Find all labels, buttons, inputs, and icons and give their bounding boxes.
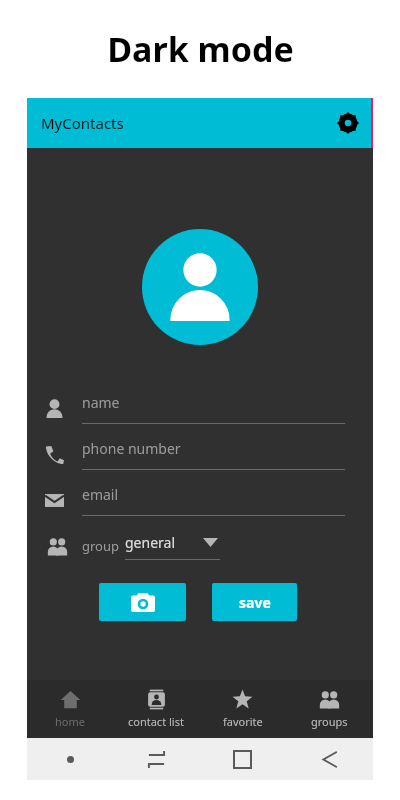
staticText: email	[82, 485, 119, 504]
button[interactable]: Recents	[199, 738, 286, 780]
staticText: MyContacts	[41, 113, 325, 133]
staticText: general	[125, 533, 176, 552]
staticText: save	[239, 593, 271, 612]
button[interactable]: favorite	[199, 680, 286, 738]
button[interactable]: Profile photo	[142, 229, 258, 345]
button[interactable]: name	[27, 385, 373, 431]
button[interactable]: email	[27, 477, 373, 523]
button[interactable]: Take photo	[99, 583, 186, 621]
button[interactable]: save	[212, 583, 297, 621]
button[interactable]: Assistant	[27, 738, 113, 780]
staticText: home	[55, 714, 85, 729]
button[interactable]: groups	[286, 680, 373, 738]
staticText: group	[82, 537, 119, 555]
staticText: phone number	[82, 439, 181, 458]
staticText: contact list	[128, 714, 184, 729]
button[interactable]: Back	[286, 738, 373, 780]
staticText: groups	[311, 714, 348, 729]
button[interactable]: Settings	[325, 100, 371, 146]
button[interactable]: Switch	[113, 738, 199, 780]
staticText: name	[82, 393, 120, 412]
button[interactable]: group	[27, 523, 373, 569]
staticText: favorite	[223, 714, 263, 729]
button[interactable]: home	[27, 680, 113, 738]
button[interactable]: contact list	[113, 680, 199, 738]
staticText: Dark mode	[107, 26, 294, 72]
button[interactable]: phone number	[27, 431, 373, 477]
